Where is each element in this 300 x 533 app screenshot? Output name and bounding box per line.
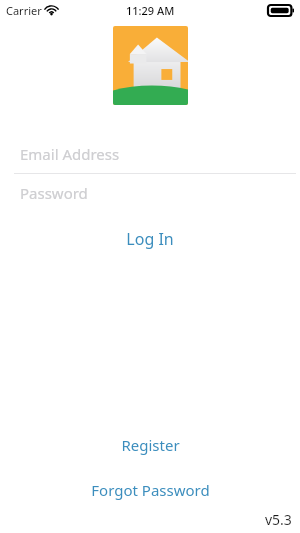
staticText: Password xyxy=(20,183,88,203)
staticText: v5.3 xyxy=(265,510,292,529)
staticText: Register xyxy=(121,435,180,455)
other: App logo xyxy=(113,26,188,105)
staticText: Forgot Password xyxy=(91,480,210,500)
button[interactable]: Password xyxy=(0,174,300,212)
staticText: Email Address xyxy=(20,144,120,164)
button[interactable]: Log In xyxy=(0,224,300,254)
staticText: 11:29 AM xyxy=(126,3,175,18)
button[interactable]: Email Address xyxy=(0,135,300,173)
button[interactable]: Register xyxy=(0,430,300,460)
staticText: Carrier xyxy=(6,3,42,18)
button[interactable]: Forgot Password xyxy=(0,475,300,505)
staticText: Log In xyxy=(126,228,174,250)
